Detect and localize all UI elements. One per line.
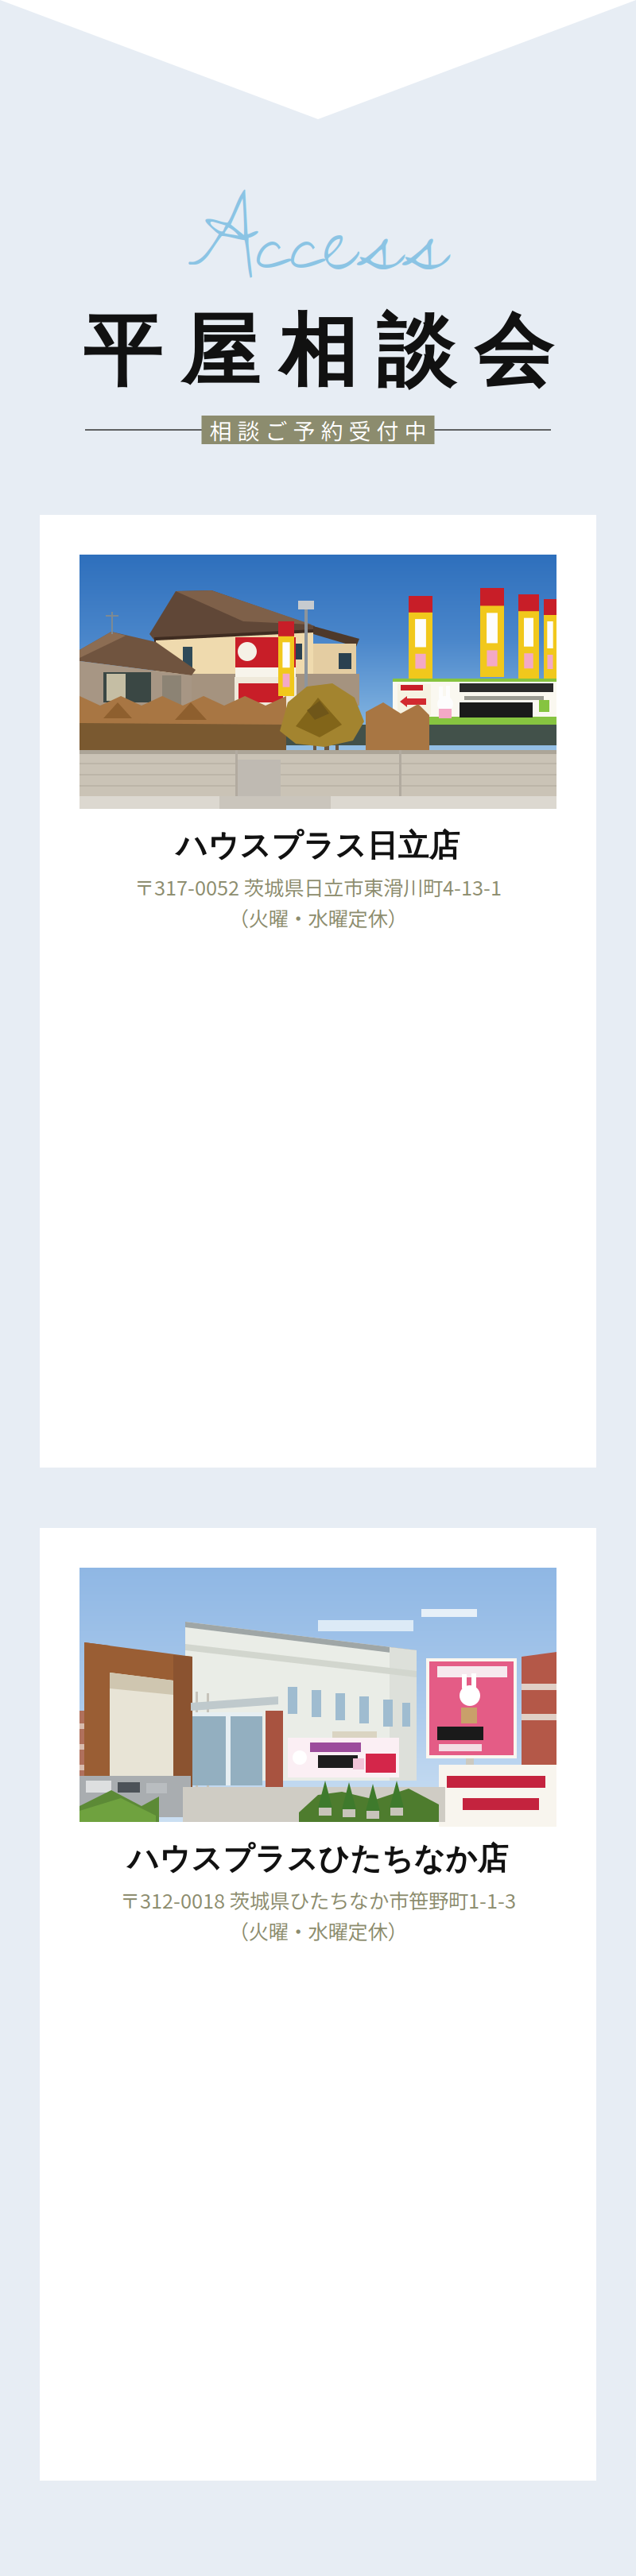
staticText: Access <box>188 151 448 319</box>
staticText: ハウスプラス日立店 <box>176 826 460 865</box>
staticText: （火曜・水曜定休） <box>229 1916 407 1945</box>
button[interactable]: ハウスプラスひたちなか店 <box>40 1528 596 2481</box>
staticText: 相談ご予約受付中 <box>209 414 427 446</box>
button[interactable]: ハウスプラス日立店 <box>40 515 596 1468</box>
staticText: 〒317-0052 茨城県日立市東滑川町4-13-1 <box>134 872 502 901</box>
staticText: 〒312-0018 茨城県ひたちなか市笹野町1-1-3 <box>120 1885 516 1914</box>
staticText: （火曜・水曜定休） <box>229 903 407 932</box>
staticText: 平屋相談会 <box>83 302 553 401</box>
staticText: ハウスプラスひたちなか店 <box>128 1839 508 1878</box>
